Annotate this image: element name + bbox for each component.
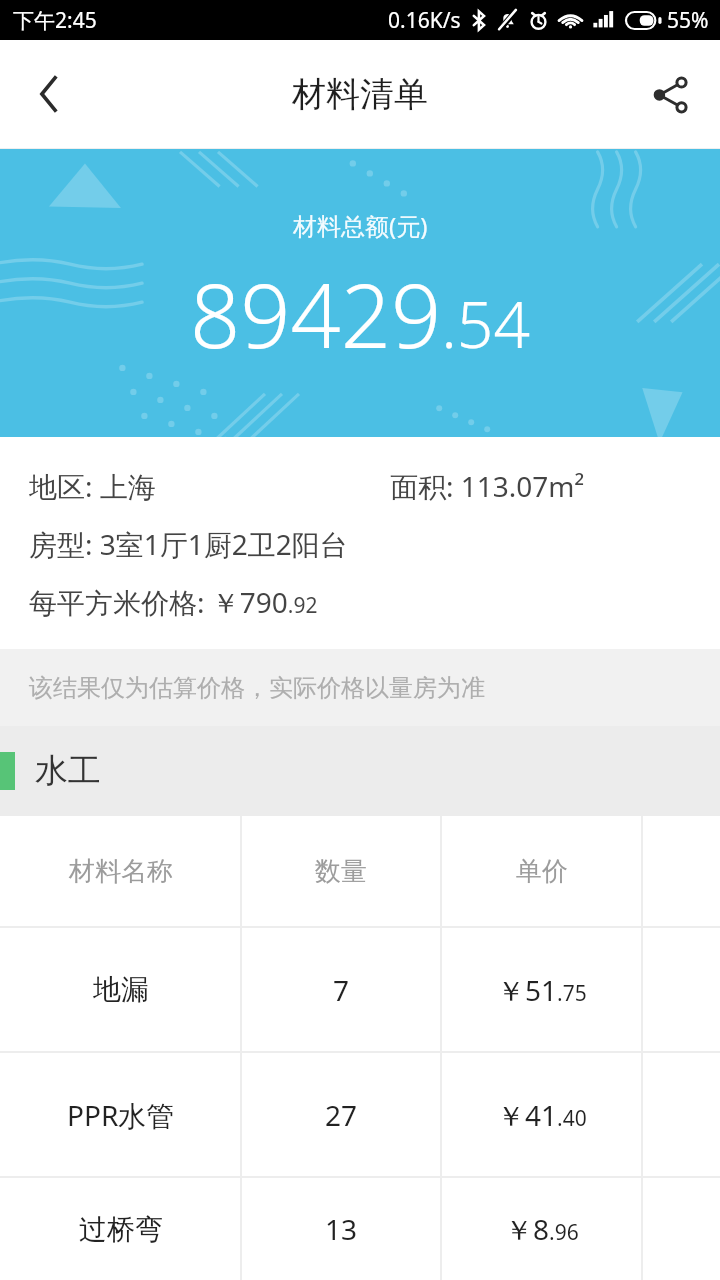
button[interactable]: Back	[0, 40, 100, 148]
staticText: 0.16K/s	[388, 6, 461, 35]
button[interactable]: 地漏	[0, 928, 720, 1051]
staticText: 89429.54	[190, 254, 530, 374]
staticText: 过桥弯	[79, 1212, 163, 1247]
staticText: 55%	[667, 6, 709, 35]
staticText: 数量	[315, 855, 367, 888]
staticText: 每平方米价格: ￥790.92	[29, 583, 318, 621]
staticText: 材料名称	[69, 855, 173, 888]
staticText: 7	[333, 971, 350, 1009]
staticText: 房型: 3室1厅1厨2卫2阳台	[29, 525, 348, 563]
staticText: 单价	[516, 855, 568, 888]
staticText: 地区: 上海	[29, 467, 156, 505]
staticText: 材料总额(元)	[293, 209, 428, 242]
staticText: 水工	[35, 750, 101, 792]
staticText: 下午2:45	[13, 6, 97, 35]
staticText: 该结果仅为估算价格，实际价格以量房为准	[29, 673, 485, 703]
staticText: ￥8.96	[505, 1210, 579, 1248]
staticText: ￥51.75	[497, 971, 587, 1009]
button[interactable]: 水工	[0, 726, 720, 816]
button[interactable]: PPR水管	[0, 1053, 720, 1176]
staticText: 27	[325, 1096, 358, 1134]
staticText: ￥41.40	[497, 1096, 587, 1134]
staticText: 13	[325, 1210, 358, 1248]
staticText: 地漏	[93, 972, 149, 1007]
staticText: 面积: 113.07m²	[390, 467, 585, 505]
staticText: 材料清单	[292, 73, 428, 116]
staticText: PPR水管	[67, 1096, 175, 1134]
button[interactable]: Share	[620, 40, 720, 148]
button[interactable]: 过桥弯	[0, 1178, 720, 1280]
